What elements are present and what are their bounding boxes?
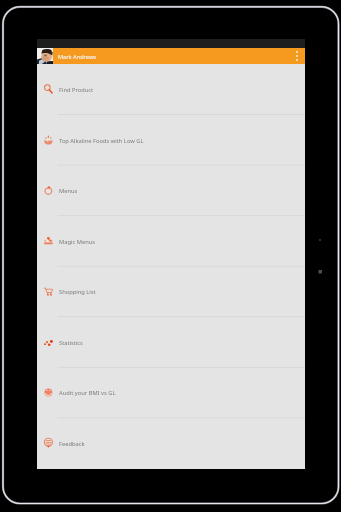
button[interactable]: Magic Menus: [37, 216, 305, 267]
staticText: Shopping List: [59, 288, 96, 296]
staticText: Menus: [59, 187, 78, 195]
staticText: Mark Andrews: [58, 53, 97, 61]
button[interactable]: Menus: [37, 165, 305, 216]
staticText: Magic Menus: [59, 238, 96, 246]
staticText: Statistics: [59, 339, 83, 347]
button[interactable]: Statistics: [37, 317, 305, 368]
button[interactable]: More options: [289, 48, 305, 64]
button[interactable]: Audit your BMI vs GL: [37, 367, 305, 418]
button[interactable]: Top Alkaline Foods with Low GL: [37, 115, 305, 166]
button[interactable]: Shopping List: [37, 266, 305, 317]
staticText: Feedback: [59, 440, 85, 448]
button[interactable]: Find Product: [37, 64, 305, 115]
button[interactable]: Profile photo: [37, 48, 53, 64]
staticText: Top Alkaline Foods with Low GL: [59, 137, 144, 145]
button[interactable]: Feedback: [37, 418, 305, 469]
staticText: Find Product: [59, 86, 94, 94]
staticText: Audit your BMI vs GL: [59, 389, 116, 397]
